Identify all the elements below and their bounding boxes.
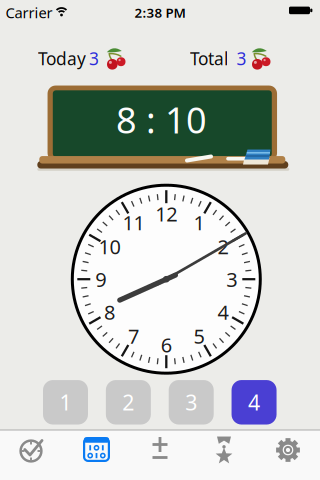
staticText: 11 [122, 209, 144, 236]
staticText: 10 [99, 233, 121, 260]
staticText: 3 [89, 47, 99, 70]
staticText: 2 [217, 233, 228, 260]
button[interactable]: 2 [106, 380, 151, 425]
button[interactable]: 1 [43, 380, 88, 425]
staticText: 2 [122, 388, 134, 416]
staticText: 1 [59, 388, 71, 416]
staticText: 8 [104, 299, 115, 325]
staticText: 6 [161, 331, 172, 358]
staticText: Total [190, 47, 228, 70]
staticText: 12 [155, 200, 177, 227]
staticText: 4 [248, 388, 260, 416]
staticText: Carrier [5, 3, 52, 22]
staticText: Today [38, 47, 86, 70]
button[interactable]: Digital time quiz [64, 430, 128, 480]
button[interactable]: 4 [232, 380, 277, 425]
staticText: 4 [217, 299, 228, 325]
button[interactable]: Settings [256, 430, 320, 480]
button[interactable]: Clock quiz [0, 430, 64, 480]
button[interactable]: Awards [192, 430, 256, 480]
button[interactable]: Arithmetic quiz [128, 430, 192, 480]
staticText: 5 [194, 323, 205, 349]
staticText: 3 [226, 266, 237, 292]
staticText: 3 [236, 47, 246, 70]
staticText: 7 [128, 323, 139, 349]
button[interactable]: 3 [169, 380, 214, 425]
staticText: 3 [185, 388, 197, 416]
staticText: 1 [194, 209, 205, 236]
staticText: 8 : 10 [116, 96, 207, 143]
staticText: 2:38 PM [134, 4, 185, 21]
staticText: 9 [95, 266, 106, 292]
